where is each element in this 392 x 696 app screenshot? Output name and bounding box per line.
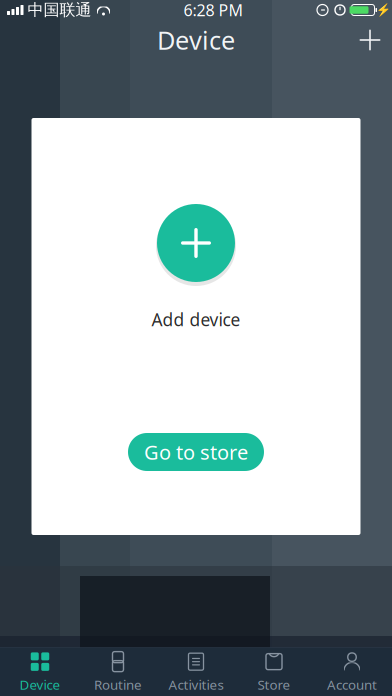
staticText: Activities [168,676,223,693]
staticText: Device [157,23,235,57]
button[interactable]: Add [348,20,392,60]
button[interactable]: Store [235,648,313,696]
staticText: Account [327,676,377,693]
staticText: Device [19,676,60,693]
staticText: 中国联通 [27,0,91,20]
staticText: Store [257,676,290,693]
staticText: Go to store [144,439,248,465]
button[interactable]: Routine [79,648,157,696]
button[interactable]: Activities [157,648,235,696]
staticText: ⚡ [376,3,391,17]
staticText: Routine [94,676,142,693]
staticText: Add device [151,308,240,331]
button[interactable]: Go to store [128,433,264,471]
staticText: 6:28 PM [183,0,243,21]
button[interactable]: Account [313,648,391,696]
button[interactable]: Device [1,648,79,696]
button[interactable]: Add device [153,200,239,286]
